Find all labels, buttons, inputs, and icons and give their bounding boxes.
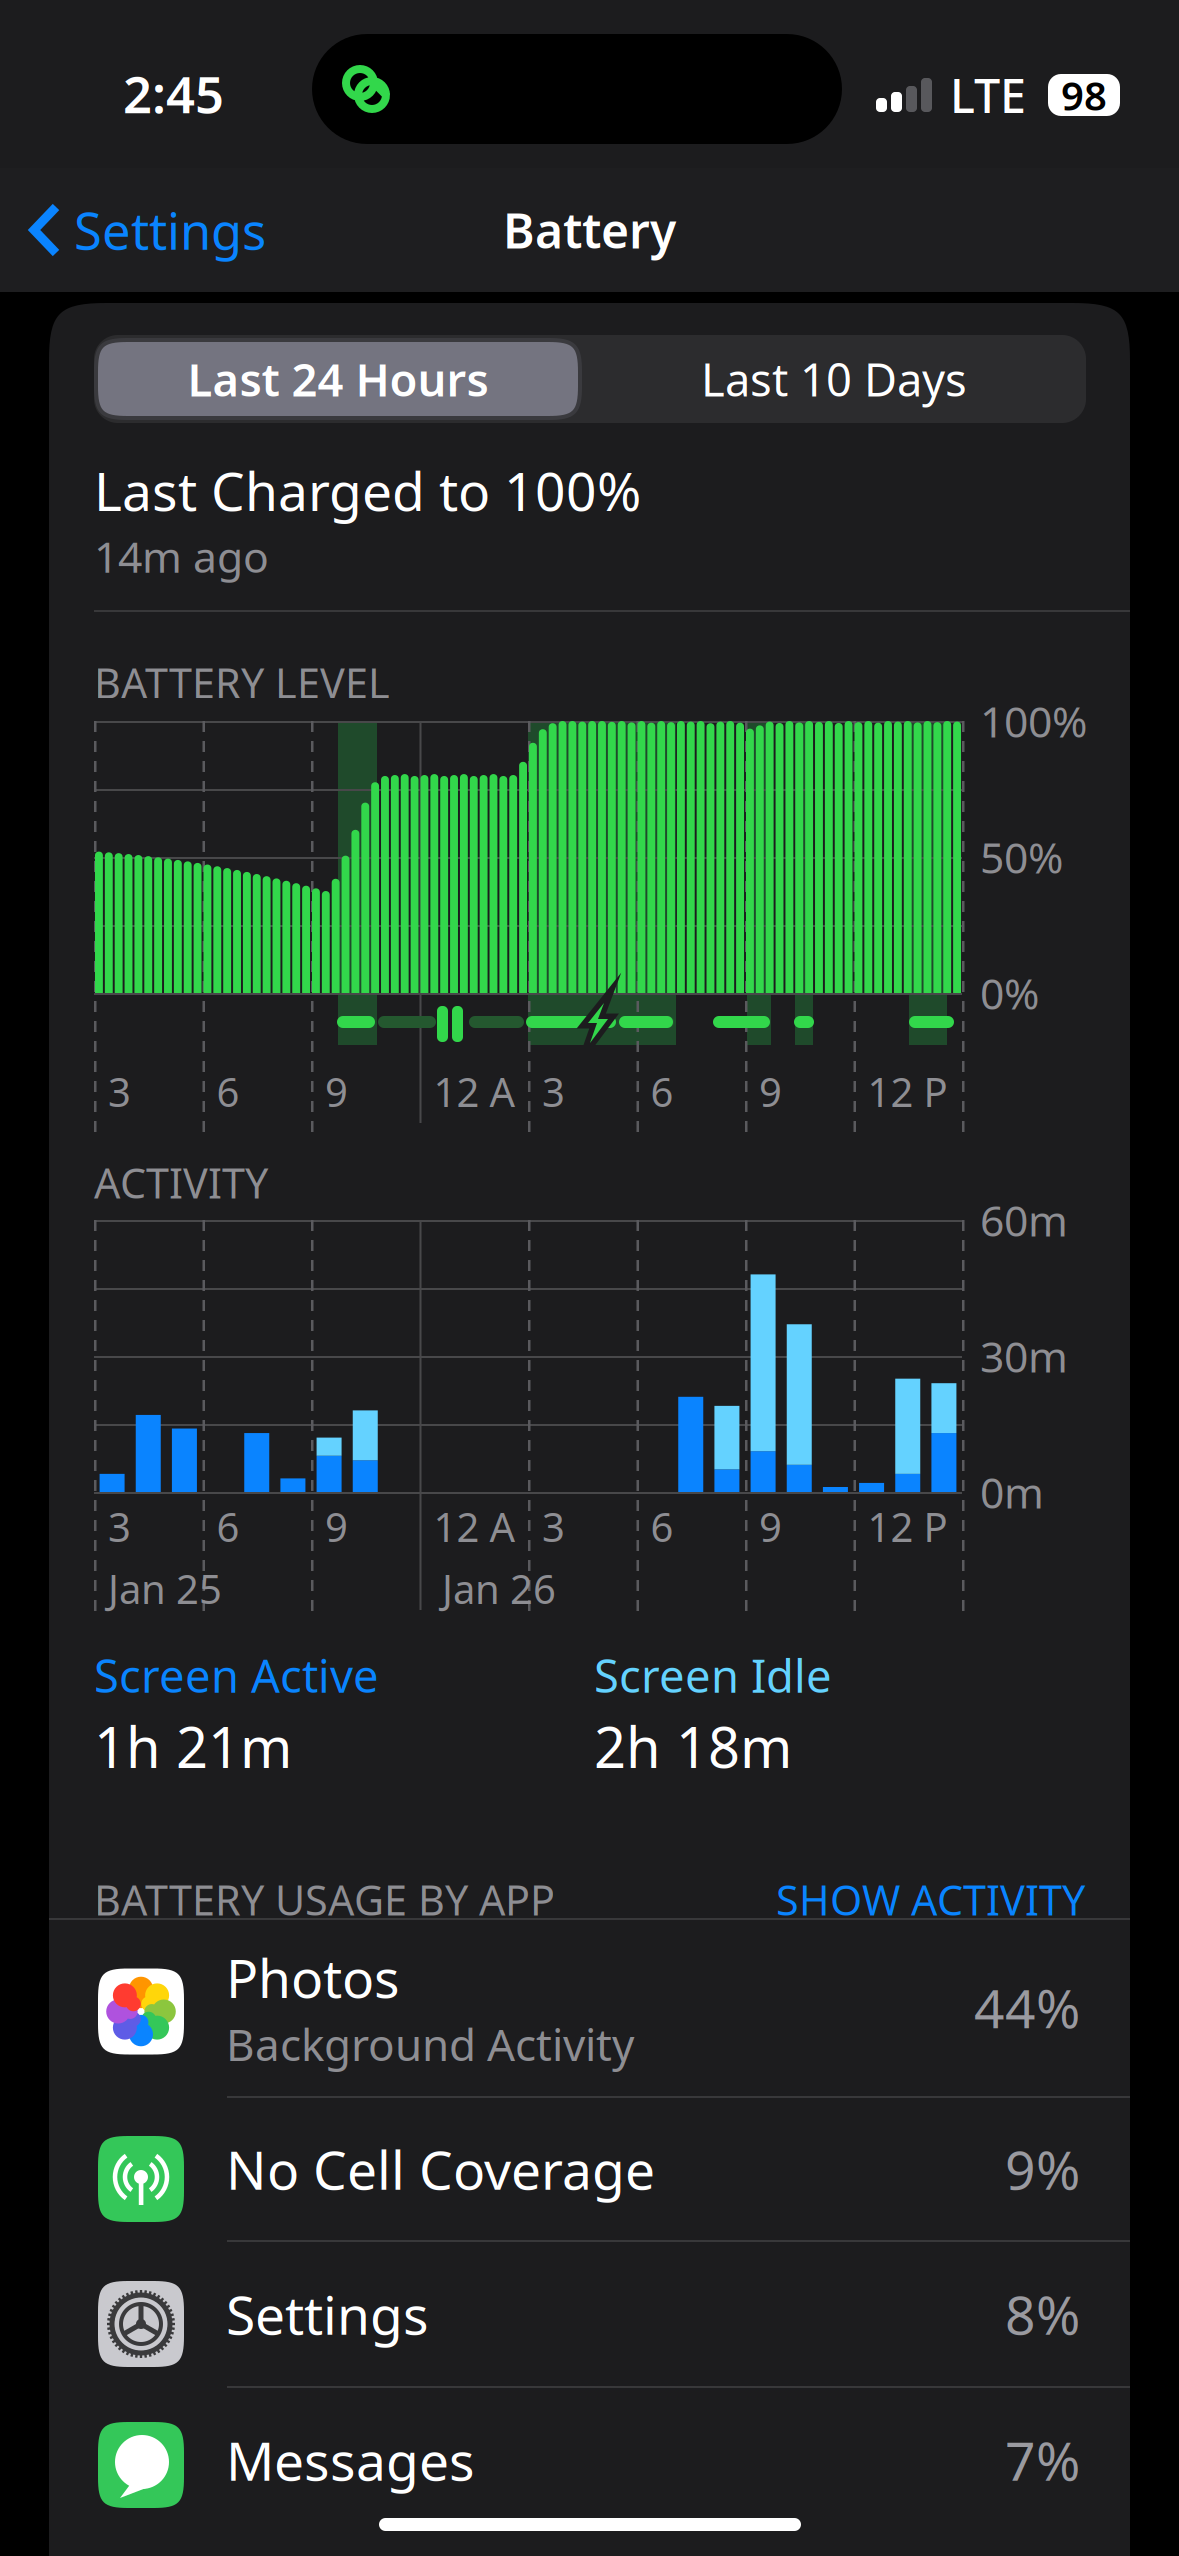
button[interactable]: Messages — [49, 2388, 1130, 2532]
staticText: 0m — [980, 1464, 1044, 1520]
staticText: ACTIVITY — [94, 1155, 268, 1210]
staticText: 9 — [759, 1065, 782, 1118]
staticText: Last 24 Hours — [187, 349, 488, 409]
staticText: 98 — [1061, 68, 1107, 121]
staticText: Screen Idle — [594, 1645, 832, 1705]
staticText: Jan 26 — [442, 1562, 556, 1615]
staticText: 30m — [980, 1328, 1068, 1384]
button[interactable]: Last 24 Hours — [94, 335, 582, 423]
staticText: 100% — [980, 693, 1087, 749]
staticText: Screen Active — [94, 1645, 379, 1705]
staticText: 2:45 — [123, 60, 224, 127]
staticText: 1h 21m — [94, 1709, 292, 1784]
staticText: 9 — [325, 1065, 348, 1118]
staticText: 3 — [108, 1500, 131, 1553]
button[interactable]: Last 10 Days — [586, 335, 1082, 423]
staticText: 50% — [980, 829, 1063, 885]
staticText: 2h 18m — [594, 1709, 792, 1784]
staticText: 9 — [759, 1500, 782, 1553]
staticText: Settings — [226, 2279, 429, 2349]
staticText: Settings — [74, 196, 266, 264]
staticText: 7% — [1005, 2425, 1080, 2495]
staticText: 60m — [980, 1192, 1068, 1248]
button[interactable]: Photos — [49, 1919, 1130, 2096]
staticText: 3 — [108, 1065, 131, 1118]
staticText: 8% — [1005, 2279, 1080, 2349]
staticText: Jan 25 — [108, 1562, 222, 1615]
staticText: 9 — [325, 1500, 348, 1553]
staticText: 12 A — [433, 1065, 515, 1118]
staticText: Background Activity — [226, 2015, 634, 2073]
staticText: LTE — [950, 64, 1026, 126]
staticText: 6 — [650, 1065, 673, 1118]
staticText: BATTERY USAGE BY APP — [94, 1872, 555, 1927]
staticText: Last Charged to 100% — [94, 455, 641, 526]
staticText: No Cell Coverage — [226, 2134, 655, 2204]
staticText: BATTERY LEVEL — [94, 655, 390, 710]
staticText: 12 A — [433, 1500, 515, 1553]
staticText: 0% — [980, 965, 1039, 1021]
staticText: 6 — [216, 1065, 239, 1118]
staticText: 6 — [650, 1500, 673, 1553]
staticText: Messages — [226, 2425, 475, 2495]
button[interactable]: SHOW ACTIVITY — [776, 1872, 1085, 1927]
staticText: 44% — [974, 1972, 1080, 2043]
staticText: 12 P — [867, 1500, 947, 1553]
staticText: 12 P — [867, 1065, 947, 1118]
button[interactable]: Settings — [49, 2242, 1130, 2386]
staticText: 6 — [216, 1500, 239, 1553]
staticText: Battery — [503, 198, 676, 262]
button[interactable]: Settings — [0, 176, 266, 284]
staticText: 9% — [1005, 2134, 1080, 2204]
staticText: 14m ago — [94, 528, 269, 584]
staticText: 3 — [542, 1065, 565, 1118]
staticText: Last 10 Days — [701, 349, 967, 409]
staticText: 3 — [542, 1500, 565, 1553]
button[interactable]: No Cell Coverage — [49, 2098, 1130, 2240]
staticText: Photos — [226, 1942, 400, 2013]
staticText: SHOW ACTIVITY — [776, 1872, 1085, 1927]
